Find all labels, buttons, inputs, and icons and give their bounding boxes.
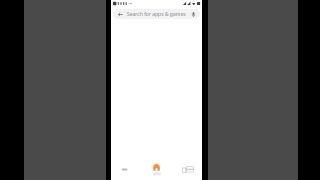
button[interactable]: Back	[117, 162, 131, 176]
button[interactable]: Back	[113, 9, 200, 19]
staticText: Search for apps & games	[127, 11, 187, 18]
button[interactable]: Recent apps	[180, 162, 196, 176]
button[interactable]: Back	[116, 10, 124, 18]
button[interactable]: Home	[148, 161, 164, 177]
button[interactable]: Voice search	[189, 10, 197, 18]
